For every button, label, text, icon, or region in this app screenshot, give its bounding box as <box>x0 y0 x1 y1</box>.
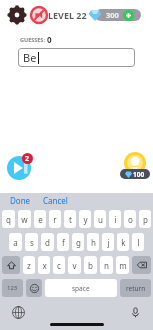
staticText: s <box>30 237 34 248</box>
button[interactable]: Done <box>8 194 33 207</box>
button[interactable]: 300 <box>88 8 147 22</box>
button[interactable]: z <box>23 256 35 274</box>
staticText: k <box>121 237 126 248</box>
staticText: g <box>76 237 81 248</box>
button[interactable]: Be <box>18 48 135 67</box>
button[interactable]: h <box>87 233 99 251</box>
button[interactable]: Settings <box>8 6 26 24</box>
staticText: x <box>42 260 47 271</box>
button[interactable]: w <box>18 210 31 228</box>
staticText: 300 <box>106 10 119 20</box>
staticText: p <box>143 214 148 225</box>
button[interactable]: u <box>94 210 106 228</box>
staticText: w <box>21 214 28 225</box>
staticText: f <box>62 237 65 248</box>
button[interactable]: m <box>116 256 129 274</box>
button[interactable]: k <box>117 233 129 251</box>
staticText: 2 <box>25 154 30 164</box>
button[interactable]: o <box>124 210 136 228</box>
staticText: q <box>6 214 11 225</box>
staticText: r <box>53 214 57 225</box>
button[interactable]: Change keyboard language <box>10 304 26 320</box>
button[interactable]: r <box>49 210 61 228</box>
button[interactable]: t <box>64 210 76 228</box>
staticText: t <box>69 214 72 225</box>
staticText: LEVEL 22 <box>48 9 87 21</box>
button[interactable]: f <box>57 233 69 251</box>
staticText: 100 <box>133 170 145 179</box>
button[interactable]: Cancel <box>41 194 70 207</box>
button[interactable]: a <box>9 233 22 251</box>
button[interactable]: c <box>53 256 65 274</box>
staticText: e <box>38 214 43 225</box>
button[interactable]: Dictation <box>127 304 143 320</box>
staticText: u <box>98 214 103 225</box>
button[interactable]: d <box>41 233 54 251</box>
button[interactable]: Mute sound <box>30 6 48 24</box>
staticText: space <box>72 284 90 293</box>
button[interactable]: Hint <box>120 152 150 182</box>
button[interactable]: v <box>68 256 81 274</box>
button[interactable]: y <box>79 210 91 228</box>
button[interactable]: j <box>102 233 114 251</box>
staticText: n <box>104 260 109 271</box>
button[interactable]: b <box>84 256 97 274</box>
staticText: GUESSES: <box>20 36 47 43</box>
button[interactable]: n <box>100 256 113 274</box>
staticText: l <box>137 237 140 248</box>
button[interactable]: 123 <box>2 279 23 297</box>
staticText: Done <box>10 195 31 206</box>
button[interactable]: e <box>34 210 46 228</box>
staticText: Cancel <box>43 195 68 206</box>
staticText: j <box>107 237 110 248</box>
button[interactable]: l <box>132 233 144 251</box>
button[interactable]: Shift <box>2 256 20 274</box>
staticText: h <box>91 237 96 248</box>
staticText: m <box>119 260 127 271</box>
button[interactable]: return <box>120 279 151 297</box>
staticText: b <box>88 260 93 271</box>
staticText: y <box>83 214 88 225</box>
staticText: d <box>45 237 50 248</box>
button[interactable]: Skip level <box>6 153 36 181</box>
button[interactable]: q <box>2 210 15 228</box>
staticText: 0 <box>47 34 52 45</box>
button[interactable]: Emoji <box>26 279 42 297</box>
button[interactable]: Backspace <box>132 256 151 274</box>
staticText: z <box>27 260 31 271</box>
button[interactable]: g <box>72 233 84 251</box>
staticText: 123 <box>7 284 18 292</box>
staticText: v <box>72 260 77 271</box>
button[interactable]: p <box>139 210 151 228</box>
staticText: return <box>126 284 146 293</box>
staticText: c <box>57 260 61 271</box>
button[interactable]: i <box>109 210 121 228</box>
button[interactable]: s <box>25 233 38 251</box>
button[interactable]: space <box>45 279 117 297</box>
staticText: o <box>128 214 133 225</box>
staticText: i <box>114 214 117 225</box>
staticText: Be <box>23 50 37 65</box>
button[interactable]: x <box>38 256 50 274</box>
staticText: a <box>13 237 18 248</box>
